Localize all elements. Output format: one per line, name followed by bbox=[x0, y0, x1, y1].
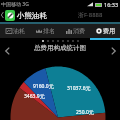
staticText: 3463.9元 bbox=[24, 93, 45, 100]
staticText: 16:33 bbox=[104, 1, 119, 8]
staticText: 250.0元 bbox=[76, 109, 94, 116]
button[interactable]: Next chart bbox=[107, 45, 119, 57]
button[interactable]: 排名 bbox=[30, 24, 60, 38]
staticText: 排名 bbox=[43, 27, 55, 35]
staticText: 中国移动 3G bbox=[1, 1, 29, 8]
staticText: 小熊油耗 bbox=[17, 11, 47, 20]
button[interactable]: 消费 bbox=[60, 24, 90, 38]
staticText: 浙F·8888 bbox=[78, 11, 103, 19]
button[interactable]: 小熊油耗 bbox=[0, 8, 120, 22]
staticText: 总费用构成统计图 bbox=[34, 44, 86, 52]
button[interactable]: 油耗 bbox=[0, 24, 30, 38]
staticText: 消费 bbox=[73, 27, 85, 35]
staticText: 9160.0元 bbox=[33, 83, 54, 90]
staticText: 31037.6元 bbox=[67, 85, 91, 92]
button[interactable]: Previous chart bbox=[1, 45, 13, 57]
staticText: 费用 bbox=[103, 27, 115, 35]
button[interactable]: 费用 bbox=[90, 24, 120, 38]
staticText: 油耗 bbox=[13, 27, 25, 35]
